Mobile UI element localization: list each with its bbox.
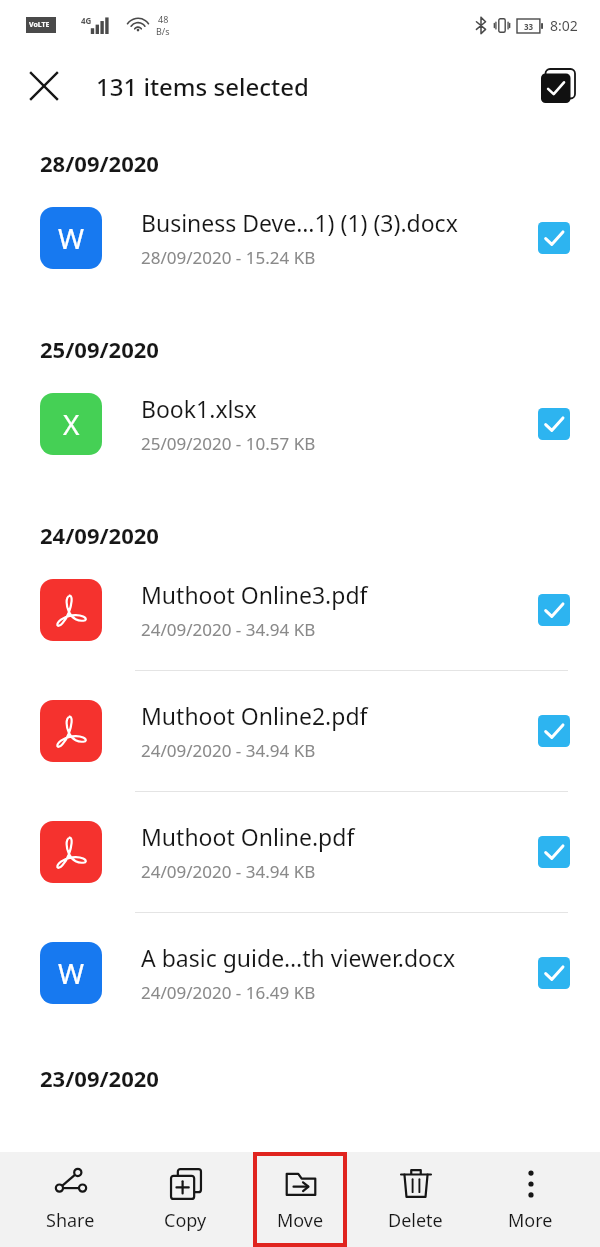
staticText: 24/09/2020 [40, 520, 159, 550]
button[interactable]: Selected [526, 824, 582, 880]
staticText: 8:02 [550, 16, 578, 35]
staticText: Muthoot Online.pdf [141, 821, 355, 852]
button[interactable]: Selected [526, 945, 582, 1001]
button[interactable]: Delete [370, 1154, 460, 1245]
staticText: Muthoot Online2.pdf [141, 700, 368, 731]
staticText: VoLTE [29, 20, 50, 30]
staticText: 131 items selected [96, 70, 309, 103]
button[interactable]: X [0, 364, 600, 484]
staticText: 23/09/2020 [40, 1063, 159, 1093]
staticText: 28/09/2020 - 15.24 KB [141, 246, 316, 269]
button[interactable]: Muthoot Online.pdf [0, 792, 600, 912]
staticText: More [508, 1208, 553, 1233]
button[interactable]: Select all [530, 58, 586, 114]
staticText: 25/09/2020 - 10.57 KB [141, 432, 316, 455]
button[interactable]: Selected [526, 210, 582, 266]
staticText: 28/09/2020 [40, 148, 159, 178]
button[interactable]: Close selection [16, 58, 72, 114]
button[interactable]: More [485, 1154, 575, 1245]
button[interactable]: W [0, 913, 600, 1033]
staticText: 48 [158, 13, 169, 25]
staticText: Move [277, 1208, 324, 1233]
staticText: Copy [164, 1208, 207, 1233]
staticText: 33 [524, 21, 534, 32]
staticText: Muthoot Online3.pdf [141, 579, 368, 610]
button[interactable]: Selected [526, 582, 582, 638]
staticText: Business Deve…1) (1) (3).docx [141, 207, 458, 238]
button[interactable]: Muthoot Online2.pdf [0, 671, 600, 791]
staticText: 4G [81, 15, 92, 26]
staticText: Share [46, 1208, 95, 1233]
staticText: 24/09/2020 - 16.49 KB [141, 981, 316, 1004]
button[interactable]: Selected [526, 703, 582, 759]
staticText: 25/09/2020 [40, 334, 159, 364]
staticText: Book1.xlsx [141, 393, 257, 424]
staticText: 24/09/2020 - 34.94 KB [141, 860, 316, 883]
staticText: Delete [388, 1208, 443, 1233]
staticText: W [58, 954, 85, 992]
button[interactable]: Move [255, 1154, 345, 1245]
button[interactable]: Muthoot Online3.pdf [0, 550, 600, 670]
button[interactable]: Share [25, 1154, 115, 1245]
staticText: 24/09/2020 - 34.94 KB [141, 739, 316, 762]
staticText: B/s [156, 25, 170, 37]
button[interactable]: W [0, 178, 600, 298]
staticText: X [63, 405, 80, 443]
staticText: 24/09/2020 - 34.94 KB [141, 618, 316, 641]
button[interactable]: Copy [140, 1154, 230, 1245]
staticText: A basic guide…th viewer.docx [141, 942, 456, 973]
button[interactable]: Selected [526, 396, 582, 452]
staticText: W [58, 219, 85, 257]
